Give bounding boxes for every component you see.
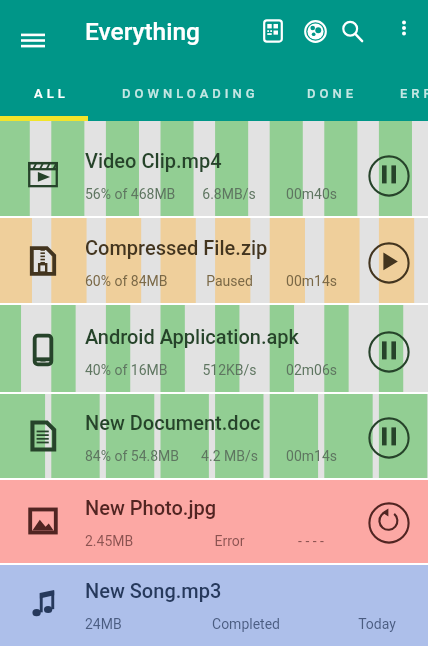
staticText: 02m06s (286, 362, 337, 378)
staticText: 4.2 MB/s (201, 448, 258, 464)
staticText: Today (358, 616, 396, 632)
button[interactable]: play (366, 240, 411, 285)
staticText: DONE (307, 86, 358, 101)
button[interactable]: retry (366, 500, 411, 545)
button[interactable]: Open browser (292, 8, 338, 54)
staticText: Error (214, 533, 245, 549)
staticText: 512KB/s (202, 362, 257, 378)
button[interactable]: Scan QR code (250, 8, 296, 54)
staticText: 6.8MB/s (202, 186, 256, 202)
staticText: 56% of 468MB (85, 186, 176, 202)
staticText: 24MB (85, 616, 122, 632)
button[interactable]: More options (384, 8, 424, 48)
staticText: Completed (212, 616, 280, 632)
button[interactable]: Search (329, 8, 375, 54)
staticText: Video Clip.mp4 (85, 149, 222, 172)
staticText: 2.45MB (85, 533, 134, 549)
staticText: Paused (206, 273, 253, 289)
button[interactable]: pause (366, 415, 411, 460)
staticText: Everything (85, 17, 200, 46)
button[interactable]: New Photo.jpg (0, 480, 428, 563)
staticText: New Document.doc (85, 411, 261, 434)
button[interactable]: Android Application.apk (0, 305, 428, 392)
staticText: Android Application.apk (85, 325, 300, 348)
staticText: 00m14s (286, 448, 337, 464)
button[interactable]: pause (366, 329, 411, 374)
staticText: ALL (34, 86, 69, 101)
staticText: ERROR (400, 86, 428, 101)
button[interactable]: Video Clip.mp4 (0, 121, 428, 216)
staticText: New Photo.jpg (85, 496, 217, 519)
staticText: Compressed File.zip (85, 236, 268, 259)
staticText: 00m40s (286, 186, 337, 202)
button[interactable]: New Song.mp3 (0, 565, 428, 646)
button[interactable]: Compressed File.zip (0, 218, 428, 303)
button[interactable]: Open navigation menu (9, 18, 57, 66)
button[interactable]: ERROR (380, 70, 428, 117)
staticText: 00m14s (286, 273, 337, 289)
button[interactable]: New Document.doc (0, 394, 428, 478)
button[interactable]: DOWNLOADING (93, 70, 287, 117)
staticText: DOWNLOADING (122, 86, 259, 101)
staticText: 84% of 54.8MB (85, 448, 180, 464)
button[interactable]: pause (366, 153, 411, 198)
button[interactable]: ALL (7, 70, 95, 117)
staticText: - - - - (298, 533, 324, 549)
staticText: 60% of 84MB (85, 273, 168, 289)
staticText: 40% of 16MB (85, 362, 168, 378)
staticText: New Song.mp3 (85, 579, 222, 602)
button[interactable]: DONE (286, 70, 378, 117)
